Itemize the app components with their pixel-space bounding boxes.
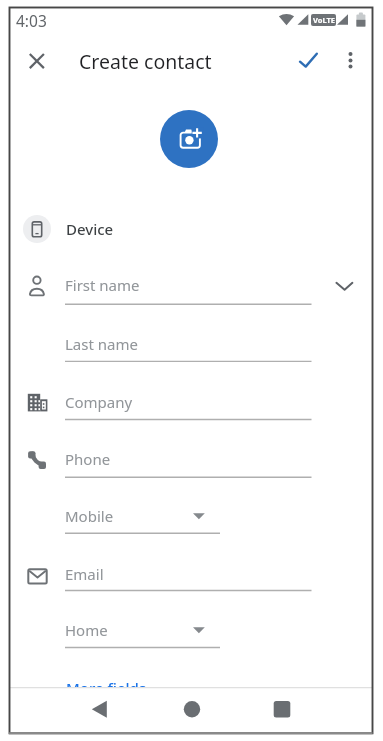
- button[interactable]: [170, 691, 214, 729]
- staticText: Last name: [65, 334, 138, 354]
- staticText: 4:03: [16, 10, 47, 30]
- button[interactable]: Home: [10, 608, 372, 652]
- button[interactable]: Mobile: [10, 494, 372, 538]
- button[interactable]: Phone: [10, 437, 372, 481]
- staticText: Mobile: [65, 506, 114, 526]
- button[interactable]: [323, 265, 365, 307]
- button[interactable]: [260, 691, 304, 729]
- staticText: Create contact: [79, 48, 212, 75]
- button[interactable]: First name: [10, 263, 372, 307]
- staticText: First name: [65, 275, 140, 295]
- staticText: More fields: [66, 678, 147, 698]
- button[interactable]: Last name: [10, 322, 372, 366]
- staticText: Home: [65, 620, 108, 640]
- staticText: VoLTE: [313, 15, 335, 25]
- button[interactable]: [23, 47, 51, 75]
- button[interactable]: More fields: [10, 666, 170, 710]
- button[interactable]: [338, 46, 363, 75]
- staticText: Email: [65, 564, 104, 584]
- staticText: Device: [66, 219, 114, 239]
- button[interactable]: Company: [10, 380, 372, 424]
- button[interactable]: Device: [10, 207, 372, 251]
- button[interactable]: [78, 691, 122, 729]
- staticText: Company: [65, 392, 133, 412]
- button[interactable]: [160, 110, 218, 168]
- button[interactable]: Email: [10, 552, 372, 596]
- button[interactable]: [294, 46, 323, 75]
- staticText: Phone: [65, 449, 111, 469]
